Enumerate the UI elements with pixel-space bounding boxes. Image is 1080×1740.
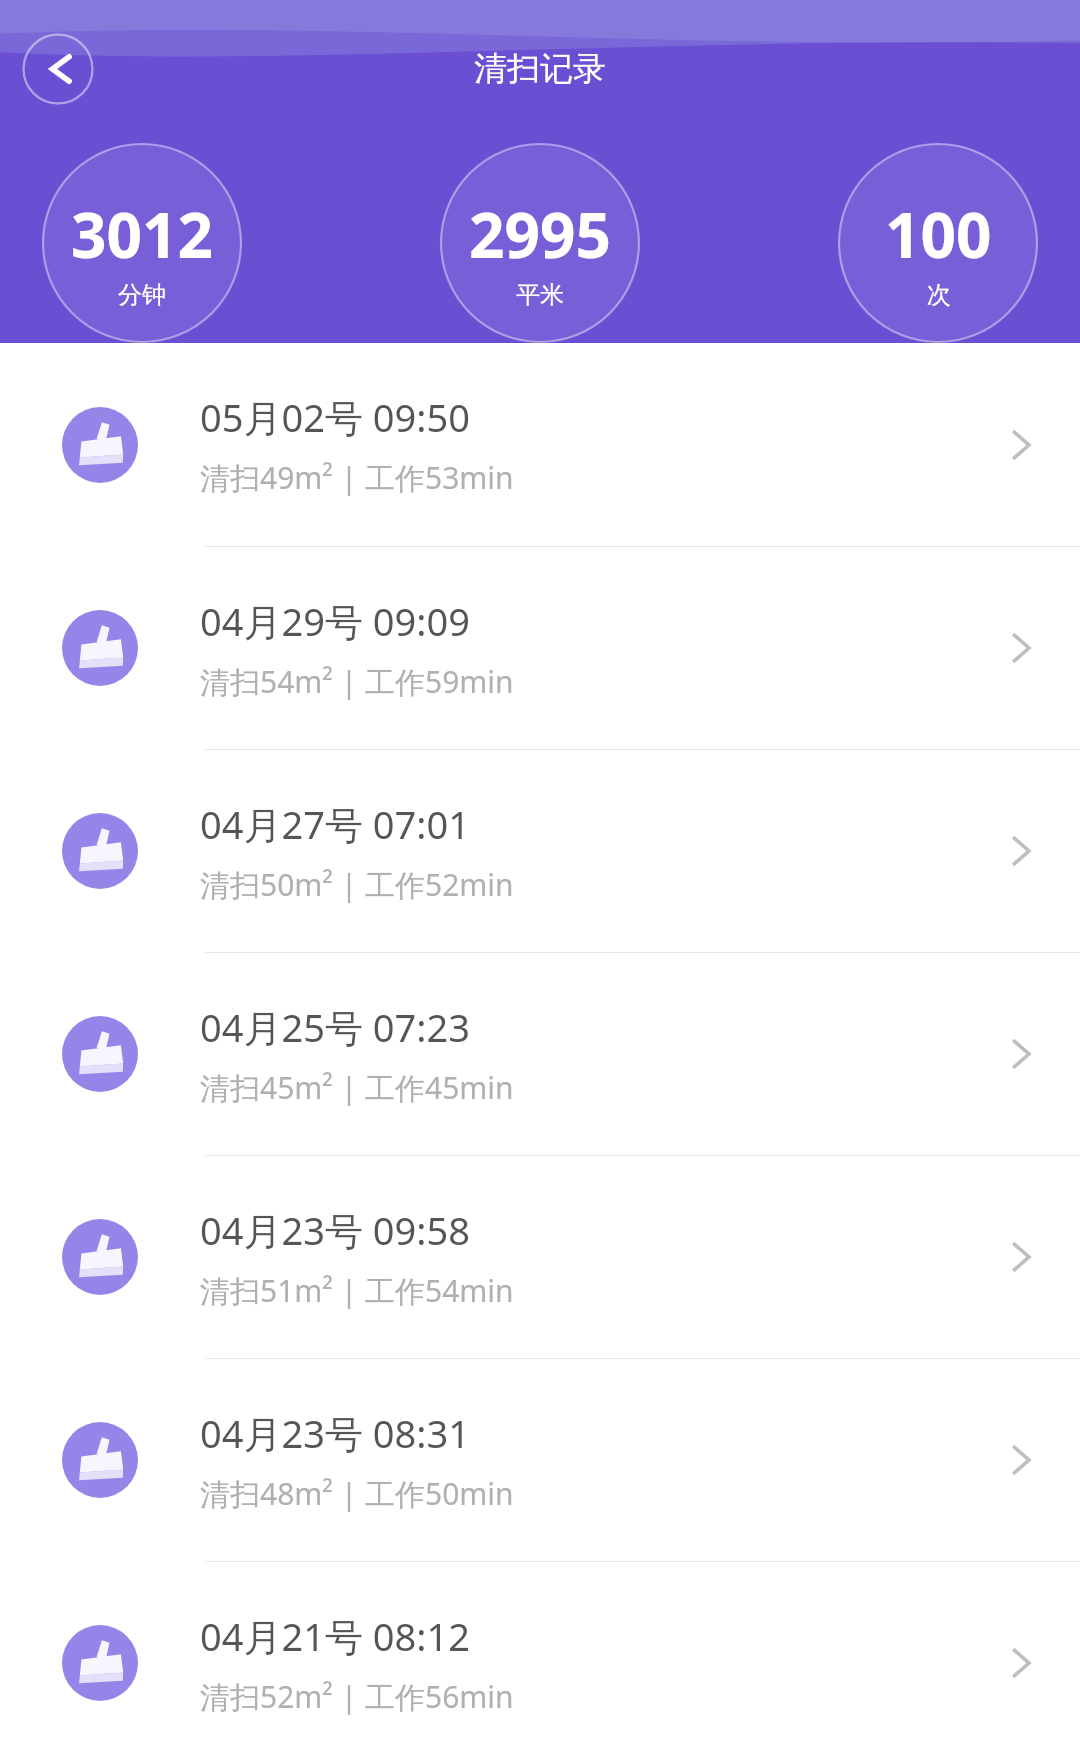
- staticText: 清扫50m² | 工作52min: [200, 864, 514, 905]
- staticText: 平米: [516, 280, 564, 310]
- staticText: 04月23号 09:58: [200, 1204, 470, 1256]
- staticText: 清扫48m² | 工作50min: [200, 1473, 514, 1514]
- staticText: 2995: [469, 192, 611, 276]
- staticText: 05月02号 09:50: [200, 391, 470, 443]
- staticText: 清扫45m² | 工作45min: [200, 1067, 514, 1108]
- staticText: 100: [885, 192, 992, 276]
- staticText: 04月23号 08:31: [200, 1407, 470, 1459]
- staticText: 清扫记录: [474, 48, 606, 90]
- staticText: 3012: [71, 192, 213, 276]
- button[interactable]: 04月23号 09:58: [0, 1156, 1080, 1358]
- staticText: 清扫49m² | 工作53min: [200, 457, 514, 498]
- staticText: 分钟: [118, 280, 166, 310]
- staticText: 清扫54m² | 工作59min: [200, 661, 514, 702]
- button[interactable]: 04月23号 08:31: [0, 1359, 1080, 1561]
- button[interactable]: 04月25号 07:23: [0, 953, 1080, 1155]
- button[interactable]: 05月02号 09:50: [0, 343, 1080, 546]
- staticText: 04月29号 09:09: [200, 595, 470, 647]
- button[interactable]: 04月29号 09:09: [0, 547, 1080, 749]
- staticText: 04月21号 08:12: [200, 1610, 470, 1662]
- button[interactable]: Back: [22, 33, 94, 105]
- staticText: 清扫52m² | 工作56min: [200, 1676, 514, 1717]
- button[interactable]: 04月21号 08:12: [0, 1562, 1080, 1740]
- staticText: 次: [927, 280, 951, 310]
- staticText: 04月25号 07:23: [200, 1001, 470, 1053]
- staticText: 清扫51m² | 工作54min: [200, 1270, 514, 1311]
- staticText: 04月27号 07:01: [200, 798, 470, 850]
- button[interactable]: 04月27号 07:01: [0, 750, 1080, 952]
